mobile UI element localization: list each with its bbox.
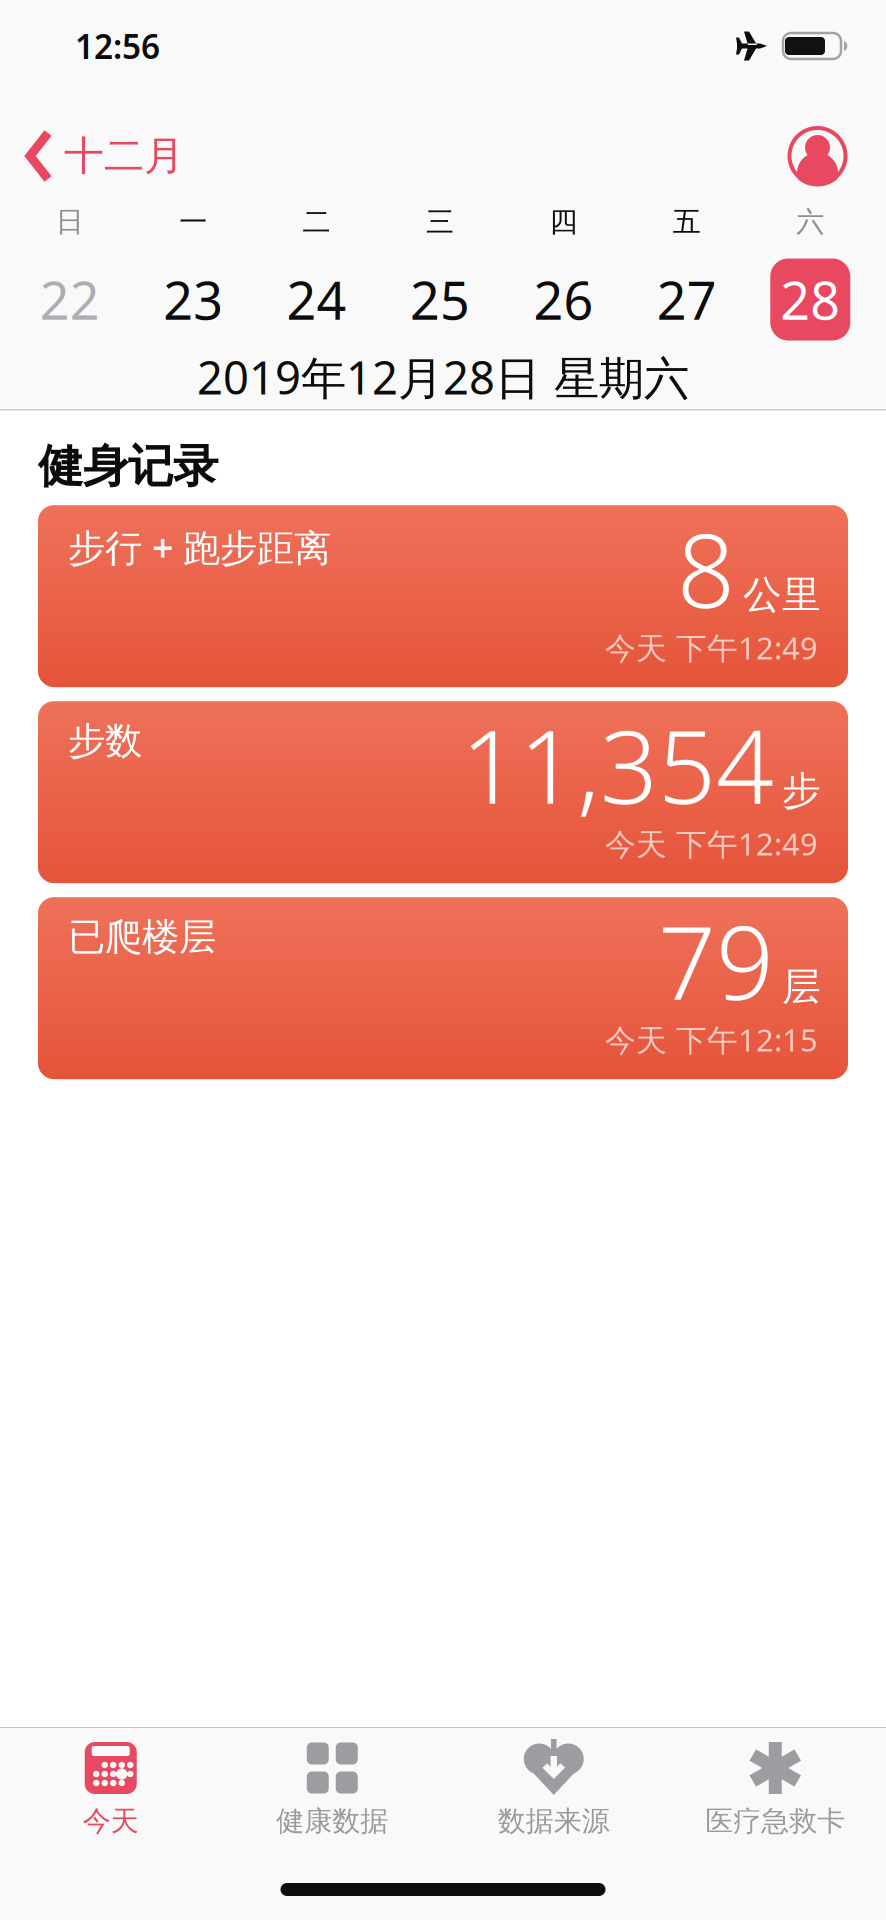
button[interactable]: 数据来源 [443, 1740, 664, 1838]
button[interactable]: 十二月 [0, 131, 184, 181]
staticText: 25 [410, 265, 470, 334]
staticText: 四 [549, 205, 577, 239]
staticText: 公里 [743, 571, 821, 619]
button[interactable]: 27 [625, 265, 748, 334]
button[interactable]: 23 [131, 265, 255, 334]
staticText: 六 [796, 205, 824, 239]
button[interactable]: 步数 [38, 701, 848, 883]
staticText: 今天 下午12:15 [605, 1019, 818, 1060]
staticText: 三 [426, 205, 454, 239]
staticText: 医疗急救卡 [705, 1804, 845, 1838]
staticText: 8 [677, 501, 735, 636]
button[interactable]: 健康数据 [221, 1740, 443, 1838]
staticText: 今天 下午12:49 [605, 823, 818, 864]
staticText: 层 [782, 963, 821, 1011]
button[interactable]: 25 [378, 265, 502, 334]
staticText: 日 [56, 205, 84, 239]
staticText: 十二月 [64, 131, 184, 180]
button[interactable]: 26 [502, 265, 625, 334]
staticText: 数据来源 [498, 1804, 610, 1838]
staticText: 步 [782, 767, 821, 815]
button[interactable]: 24 [255, 265, 378, 334]
button[interactable]: 已爬楼层 [38, 897, 848, 1079]
staticText: 步行 + 跑步距离 [68, 522, 331, 572]
staticText: 今天 [83, 1804, 139, 1838]
staticText: 一 [179, 205, 207, 239]
staticText: 五 [673, 205, 701, 239]
button[interactable] [787, 125, 886, 186]
staticText: 二 [303, 205, 331, 239]
button[interactable]: 医疗急救卡 [664, 1740, 886, 1838]
staticText: 健身记录 [38, 438, 218, 494]
button[interactable]: 步行 + 跑步距离 [38, 505, 848, 687]
button[interactable]: 28 [749, 258, 872, 340]
staticText: 22 [40, 265, 100, 334]
button[interactable]: 今天 [0, 1740, 221, 1838]
staticText: 79 [658, 893, 774, 1028]
staticText: 26 [533, 265, 593, 334]
staticText: 23 [163, 265, 223, 334]
staticText: 健康数据 [276, 1804, 388, 1838]
staticText: 11,354 [461, 697, 774, 832]
staticText: 2019年12月28日 星期六 [197, 347, 689, 407]
staticText: 28 [780, 265, 840, 334]
staticText: 已爬楼层 [68, 914, 216, 960]
staticText: 12:56 [75, 24, 160, 68]
staticText: 27 [657, 265, 717, 334]
staticText: 步数 [68, 718, 142, 764]
staticText: 今天 下午12:49 [605, 627, 818, 668]
staticText: 24 [287, 265, 347, 334]
